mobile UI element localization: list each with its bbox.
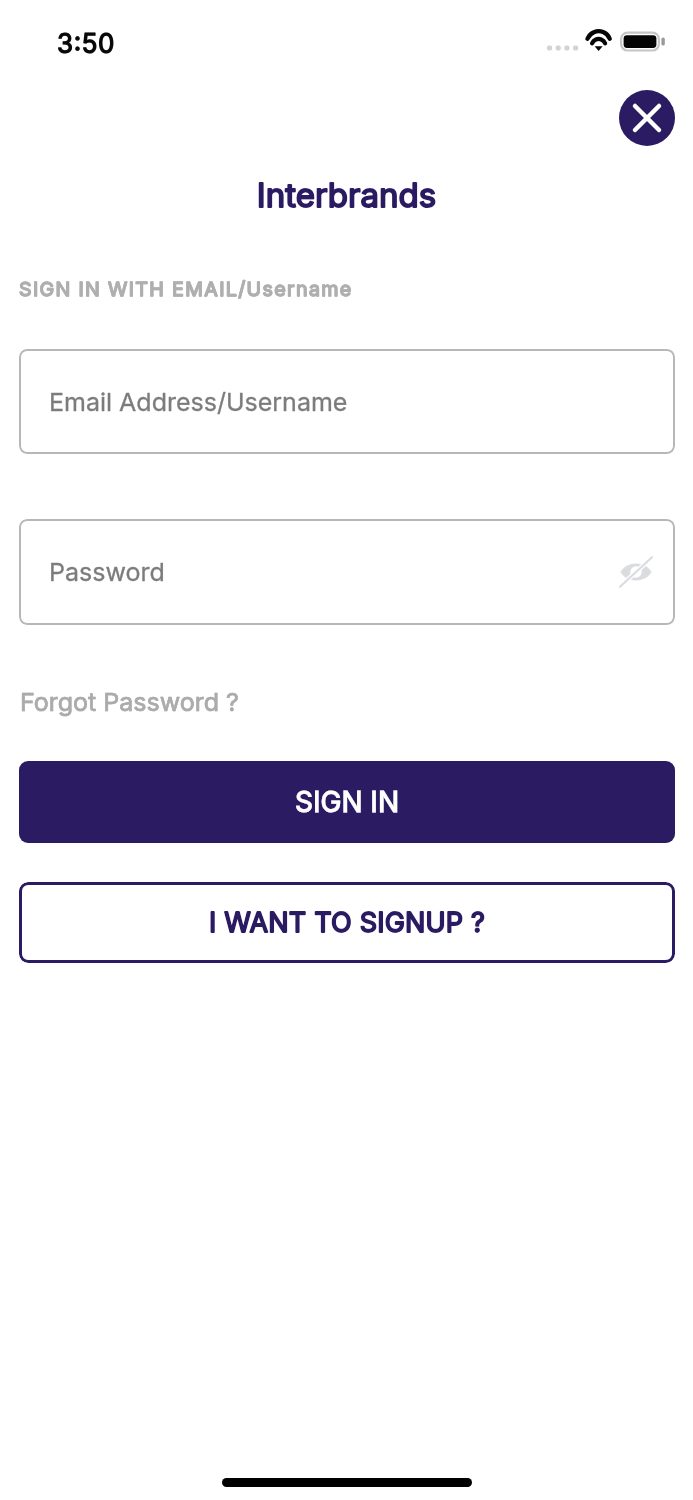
- staticText: 3:50: [57, 28, 137, 59]
- staticText: Interbrands: [0, 175, 693, 215]
- staticText: Interbrands: [0, 175, 693, 215]
- staticText: Forgot Password ?: [20, 687, 250, 717]
- staticText: Password: [49, 557, 479, 587]
- button[interactable]: Show password: [619, 557, 653, 587]
- staticText: I WANT TO SIGNUP ?: [19, 906, 675, 939]
- staticText: Password: [49, 557, 479, 587]
- staticText: SIGN IN: [19, 785, 675, 819]
- staticText: Email Address/Username: [49, 387, 479, 417]
- staticText: I WANT TO SIGNUP ?: [19, 906, 675, 939]
- staticText: 3:50: [57, 28, 137, 59]
- button[interactable]: I WANT TO SIGNUP ?: [19, 882, 675, 963]
- staticText: Forgot Password ?: [20, 687, 250, 717]
- button[interactable]: Close: [619, 90, 675, 146]
- button[interactable]: Forgot Password ?: [20, 683, 250, 721]
- button[interactable]: SIGN IN: [19, 761, 675, 843]
- staticText: SIGN IN WITH EMAIL/Username: [19, 277, 693, 301]
- staticText: SIGN IN WITH EMAIL/Username: [19, 277, 693, 301]
- button[interactable]: Password: [19, 519, 675, 625]
- button[interactable]: Email Address/Username: [19, 349, 675, 454]
- staticText: Email Address/Username: [49, 387, 479, 417]
